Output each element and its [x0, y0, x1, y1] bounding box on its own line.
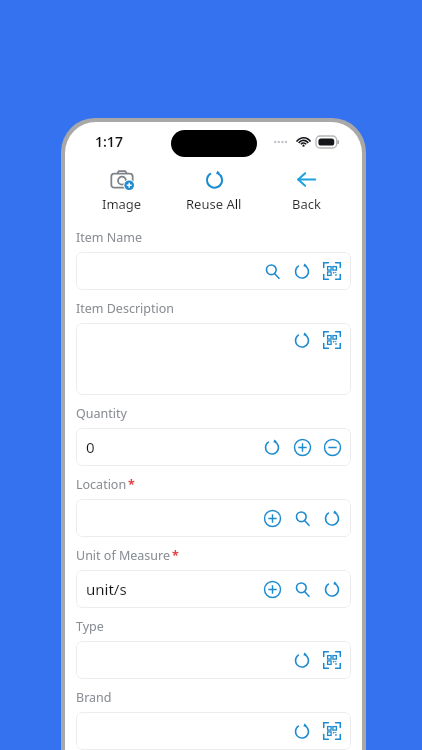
staticText: Item Description	[76, 300, 175, 317]
button[interactable]: Subtract	[317, 432, 347, 462]
button[interactable]: Scan code	[317, 645, 347, 675]
button[interactable]: Reuse	[317, 503, 347, 533]
button[interactable]: Add	[257, 574, 287, 604]
staticText: Brand	[76, 689, 112, 706]
button[interactable]: Add image	[75, 162, 168, 217]
staticText: Back	[292, 195, 321, 213]
button[interactable]: Reuse	[287, 716, 317, 746]
button[interactable]: Search	[287, 574, 317, 604]
button[interactable]: Search	[76, 252, 351, 290]
button[interactable]: 0	[76, 428, 351, 466]
staticText: Item Name	[76, 229, 142, 246]
staticText: Quantity	[76, 405, 127, 422]
staticText: Image	[102, 195, 142, 213]
button[interactable]: Reuse	[76, 323, 351, 395]
button[interactable]: Reuse	[76, 641, 351, 679]
button[interactable]: Add	[287, 432, 317, 462]
button[interactable]: Add	[257, 503, 287, 533]
staticText: 0	[86, 437, 95, 457]
button[interactable]: unit/s	[76, 570, 351, 608]
button[interactable]: Reuse	[287, 645, 317, 675]
staticText: *	[172, 547, 179, 564]
button[interactable]: Reuse	[317, 574, 347, 604]
button[interactable]: Scan code	[317, 256, 347, 286]
button[interactable]: Reuse	[257, 432, 287, 462]
staticText: Reuse All	[186, 195, 242, 213]
button[interactable]: Search	[287, 503, 317, 533]
staticText: *	[128, 476, 135, 493]
button[interactable]: Back	[260, 162, 352, 217]
button[interactable]: Search	[257, 256, 287, 286]
staticText: Location	[76, 476, 127, 493]
button[interactable]: Reuse	[76, 712, 351, 750]
staticText: Type	[76, 618, 104, 635]
button[interactable]: Scan code	[317, 716, 347, 746]
button[interactable]: Reuse	[287, 256, 317, 286]
button[interactable]: Add	[76, 499, 351, 537]
staticText: Unit of Measure	[76, 547, 171, 564]
button[interactable]: Scan code	[317, 325, 347, 355]
staticText: unit/s	[86, 579, 127, 599]
button[interactable]: Reuse All	[168, 162, 260, 217]
staticText: 1:17	[95, 132, 123, 151]
button[interactable]: Reuse	[287, 325, 317, 355]
